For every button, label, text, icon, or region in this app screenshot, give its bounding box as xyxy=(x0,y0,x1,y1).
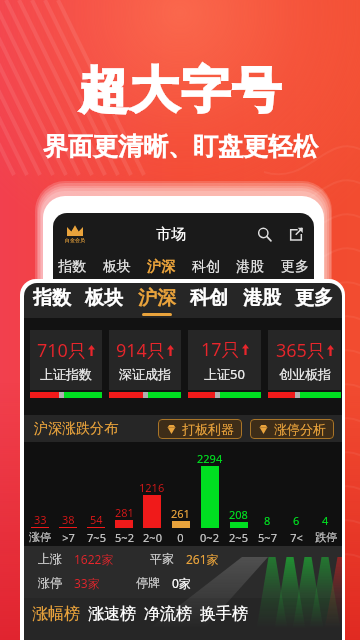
button[interactable]: 沪深 xyxy=(135,286,179,316)
staticText: 4 xyxy=(322,513,329,528)
staticText: 指数 xyxy=(33,286,71,310)
button[interactable]: 净流榜 xyxy=(140,598,196,630)
staticText: 白金会员 xyxy=(65,237,85,243)
staticText: 5~2 xyxy=(115,530,134,545)
staticText: 261家 xyxy=(186,551,219,567)
staticText: 上证指数 xyxy=(40,366,92,382)
staticText: 7< xyxy=(290,530,303,545)
staticText: 914只 xyxy=(116,338,165,363)
button[interactable]: 涨速榜 xyxy=(84,598,140,630)
staticText: 0~2 xyxy=(200,530,219,545)
staticText: 365只 xyxy=(276,338,325,363)
staticText: 超大字号 xyxy=(78,60,282,122)
button[interactable]: 港股 xyxy=(234,258,266,276)
staticText: 市场 xyxy=(156,225,186,244)
button[interactable]: 365只 xyxy=(268,330,341,400)
staticText: 打板利器 xyxy=(182,421,234,437)
button[interactable]: 涨停分析 xyxy=(250,419,334,439)
button[interactable]: 港股 xyxy=(240,286,284,316)
staticText: 54 xyxy=(90,512,103,527)
staticText: 6 xyxy=(293,513,300,528)
staticText: 208 xyxy=(229,507,248,522)
button[interactable]: 打板利器 xyxy=(158,419,242,439)
staticText: 上涨 xyxy=(38,551,62,566)
staticText: 5~7 xyxy=(258,530,277,545)
staticText: 8 xyxy=(264,513,271,528)
button[interactable]: 710只 xyxy=(30,330,102,400)
button[interactable]: 指数 xyxy=(56,258,88,276)
staticText: 沪深 xyxy=(147,258,175,276)
button[interactable]: 指数 xyxy=(30,286,74,316)
button[interactable]: 换手榜 xyxy=(196,598,252,630)
staticText: 指数 xyxy=(58,258,86,276)
staticText: 261 xyxy=(171,506,190,521)
button[interactable]: 板块 xyxy=(101,258,133,276)
staticText: 深证成指 xyxy=(119,366,171,382)
button[interactable]: 板块 xyxy=(82,286,126,316)
staticText: 板块 xyxy=(85,286,123,310)
staticText: 涨速榜 xyxy=(88,604,136,624)
button[interactable]: 17只 xyxy=(188,330,261,400)
staticText: 281 xyxy=(115,505,134,520)
staticText: 创业板指 xyxy=(279,366,331,382)
staticText: 平家 xyxy=(150,551,174,566)
staticText: 33家 xyxy=(74,575,100,591)
staticText: 上证50 xyxy=(204,365,245,383)
staticText: 板块 xyxy=(103,258,131,276)
button[interactable]: 沪深 xyxy=(145,258,177,281)
button[interactable]: 更多 xyxy=(279,258,311,276)
staticText: 科创 xyxy=(190,286,228,310)
staticText: 1216 xyxy=(139,480,165,495)
staticText: 710只 xyxy=(37,338,86,363)
staticText: 更多 xyxy=(295,286,333,310)
staticText: 港股 xyxy=(236,258,264,276)
staticText: 33 xyxy=(34,512,47,527)
button[interactable]: 涨幅榜 xyxy=(28,598,84,630)
button[interactable]: 科创 xyxy=(187,286,231,316)
staticText: 跌停 xyxy=(315,530,337,544)
staticText: 换手榜 xyxy=(200,604,248,624)
staticText: 17只 xyxy=(201,337,240,362)
staticText: 0 xyxy=(177,530,184,545)
staticText: 涨停 xyxy=(29,530,51,544)
staticText: 38 xyxy=(62,512,75,527)
staticText: 1622家 xyxy=(74,551,114,567)
staticText: >7 xyxy=(62,530,75,545)
staticText: 2294 xyxy=(197,451,223,466)
staticText: 净流榜 xyxy=(144,604,192,624)
button[interactable]: 更多 xyxy=(292,286,336,316)
staticText: 涨幅榜 xyxy=(32,604,80,624)
staticText: 涨停分析 xyxy=(274,421,326,437)
staticText: 2~0 xyxy=(143,530,162,545)
staticText: 沪深 xyxy=(138,286,176,310)
button[interactable]: 白金会员 xyxy=(60,225,90,243)
staticText: 界面更清晰、盯盘更轻松 xyxy=(43,131,318,162)
staticText: 7~5 xyxy=(87,530,106,545)
staticText: 停牌 xyxy=(136,575,160,590)
button[interactable]: Search xyxy=(253,223,275,245)
staticText: 沪深涨跌分布 xyxy=(34,420,118,438)
staticText: 更多 xyxy=(281,258,309,276)
button[interactable]: 科创 xyxy=(190,258,222,276)
button[interactable]: Share xyxy=(285,223,307,245)
staticText: 2~5 xyxy=(229,530,248,545)
staticText: 港股 xyxy=(243,286,281,310)
staticText: 科创 xyxy=(192,258,220,276)
staticText: 0家 xyxy=(172,575,191,591)
staticText: 涨停 xyxy=(38,575,62,590)
button[interactable]: 914只 xyxy=(109,330,181,400)
